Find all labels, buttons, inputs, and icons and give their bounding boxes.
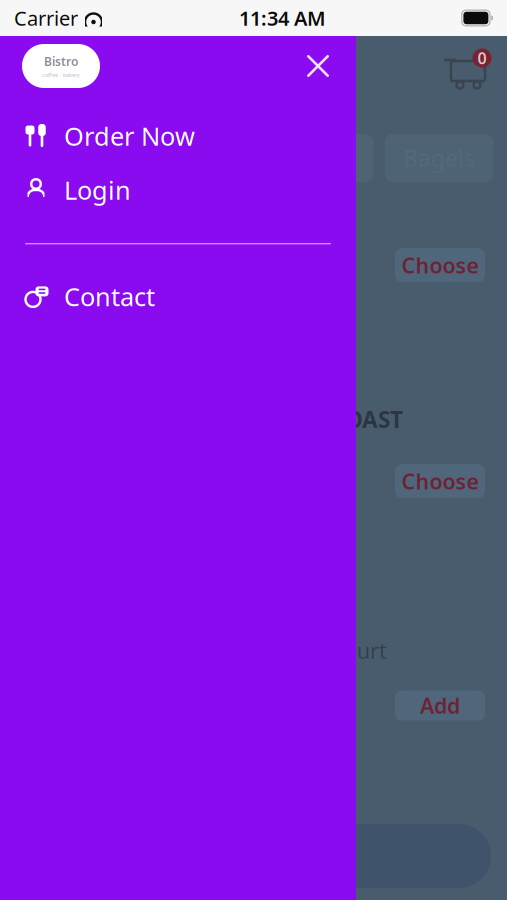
staticText: Pastries xyxy=(272,143,357,173)
staticText: coffee · bakery xyxy=(42,71,80,78)
button[interactable]: Contact xyxy=(0,270,356,322)
staticText: Add xyxy=(420,691,460,720)
button[interactable]: Choose xyxy=(395,248,485,282)
staticText: Contact xyxy=(64,280,155,313)
staticText: 11:34 AM xyxy=(239,5,326,31)
staticText: Carrier xyxy=(14,5,78,31)
staticText: 0 xyxy=(477,47,486,69)
button[interactable]: Choose xyxy=(395,464,485,498)
button[interactable]: Proceed xyxy=(16,824,491,888)
staticText: Yogurt xyxy=(320,636,387,664)
staticText: Order Now xyxy=(64,119,195,153)
staticText: Bistro xyxy=(44,53,78,69)
staticText: Choose xyxy=(401,251,478,279)
staticText: FRENCH TOAST xyxy=(236,404,403,434)
staticText: Login xyxy=(64,173,131,207)
button[interactable]: Login xyxy=(0,164,356,216)
button[interactable]: Cart xyxy=(439,50,493,96)
button[interactable]: Order Now xyxy=(0,110,356,162)
button[interactable]: Close menu xyxy=(298,46,338,86)
staticText: Choose xyxy=(401,467,478,495)
button[interactable]: Add xyxy=(395,690,485,720)
